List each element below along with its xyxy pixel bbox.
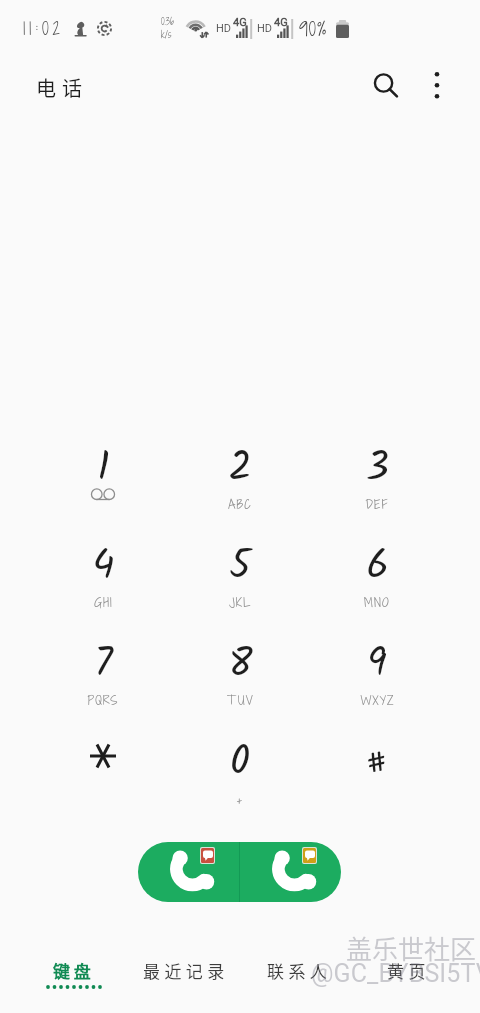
- button[interactable]: [51, 715, 155, 803]
- staticText: WXYZ: [360, 692, 395, 709]
- button[interactable]: 3: [325, 421, 429, 509]
- button[interactable]: 最近记录: [130, 946, 242, 1002]
- staticText: 1: [97, 437, 110, 501]
- staticText: JKL: [229, 594, 252, 611]
- staticText: GHI: [94, 594, 113, 611]
- button[interactable]: 联系人: [247, 946, 351, 1002]
- staticText: 5: [229, 535, 251, 599]
- button[interactable]: 键盘: [22, 946, 126, 1002]
- button[interactable]: Call: [138, 842, 239, 902]
- staticText: 4G: [274, 16, 288, 29]
- staticText: HD: [216, 22, 232, 35]
- staticText: 最近记录: [143, 958, 229, 983]
- button[interactable]: Search: [362, 62, 406, 106]
- staticText: +: [236, 792, 244, 809]
- staticText: 黄页: [387, 958, 430, 983]
- staticText: 4: [92, 535, 115, 599]
- button[interactable]: 2: [188, 421, 292, 509]
- staticText: 4G: [233, 16, 247, 29]
- staticText: #: [365, 734, 390, 792]
- staticText: 联系人: [267, 958, 332, 983]
- staticText: 8: [228, 633, 253, 697]
- staticText: 11:02: [23, 16, 64, 41]
- button[interactable]: 8: [188, 617, 292, 705]
- button[interactable]: More options: [415, 62, 459, 106]
- staticText: 3: [366, 437, 389, 501]
- staticText: DEF: [365, 496, 389, 513]
- staticText: ABC: [228, 496, 252, 513]
- button[interactable]: 黄页: [360, 946, 456, 1002]
- staticText: 盖乐世社区: [346, 929, 477, 967]
- staticText: 9: [367, 633, 387, 697]
- button[interactable]: 4: [51, 519, 155, 607]
- button[interactable]: Call: [240, 842, 341, 902]
- button[interactable]: 6: [325, 519, 429, 607]
- staticText: 0.36: [161, 15, 174, 28]
- button[interactable]: 9: [325, 617, 429, 705]
- button[interactable]: 1: [51, 421, 155, 509]
- staticText: 键盘: [53, 958, 95, 983]
- staticText: PQRS: [87, 692, 119, 709]
- staticText: 6: [366, 535, 389, 599]
- staticText: TUV: [227, 692, 254, 709]
- button[interactable]: 5: [188, 519, 292, 607]
- staticText: 90%: [299, 16, 327, 42]
- staticText: 电话: [36, 73, 88, 102]
- staticText: 7: [94, 633, 113, 697]
- staticText: 2: [228, 437, 252, 501]
- staticText: 0: [230, 731, 250, 795]
- staticText: HD: [257, 22, 273, 35]
- staticText: k/s: [161, 28, 172, 41]
- staticText: MNO: [364, 594, 390, 611]
- button[interactable]: 0: [188, 715, 292, 803]
- staticText: @GC_BYBSI5TV: [311, 959, 480, 988]
- button[interactable]: #: [325, 715, 429, 803]
- button[interactable]: 7: [51, 617, 155, 705]
